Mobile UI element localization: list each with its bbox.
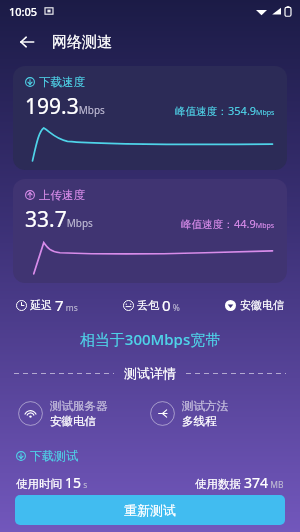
button[interactable]: 下载速度: [13, 66, 287, 170]
button[interactable]: Back: [12, 27, 42, 57]
staticText: 相当于300Mbps宽带: [0, 329, 300, 349]
button[interactable]: 丢包: [123, 295, 180, 315]
staticText: 44.9Mbps: [234, 216, 275, 231]
staticText: 延迟: [30, 298, 52, 312]
staticText: 多线程: [182, 414, 217, 428]
staticText: 安徽电信: [50, 414, 96, 428]
staticText: 下载速度: [39, 75, 85, 89]
staticText: 测试方法: [182, 399, 228, 413]
button[interactable]: 安徽电信: [225, 298, 284, 312]
staticText: 峰值速度：: [175, 105, 228, 118]
button[interactable]: 延迟: [16, 295, 78, 315]
staticText: 33.7Mbps: [25, 205, 93, 234]
button[interactable]: 上传速度: [13, 179, 287, 283]
staticText: 测试服务器: [50, 399, 108, 413]
staticText: 重新测试: [124, 502, 176, 518]
staticText: 测试详情: [124, 365, 176, 381]
button[interactable]: 测试方法: [150, 399, 282, 428]
staticText: 354.9Mbps: [228, 103, 275, 118]
staticText: 安徽电信: [240, 298, 284, 312]
staticText: 使用数据 374 MB: [195, 473, 284, 492]
button[interactable]: 测试服务器: [18, 399, 150, 428]
staticText: 峰值速度：: [181, 218, 234, 231]
staticText: 10:05: [9, 4, 38, 19]
staticText: 上传速度: [39, 188, 85, 202]
staticText: 丢包: [137, 298, 159, 312]
button[interactable]: 重新测试: [15, 495, 285, 525]
staticText: 0 %: [162, 295, 180, 315]
staticText: 199.3Mbps: [25, 92, 105, 121]
staticText: 网络测速: [52, 33, 112, 52]
staticText: 使用时间 15 s: [16, 473, 88, 492]
staticText: 下载测试: [30, 448, 78, 463]
staticText: 7 ms: [55, 295, 78, 315]
